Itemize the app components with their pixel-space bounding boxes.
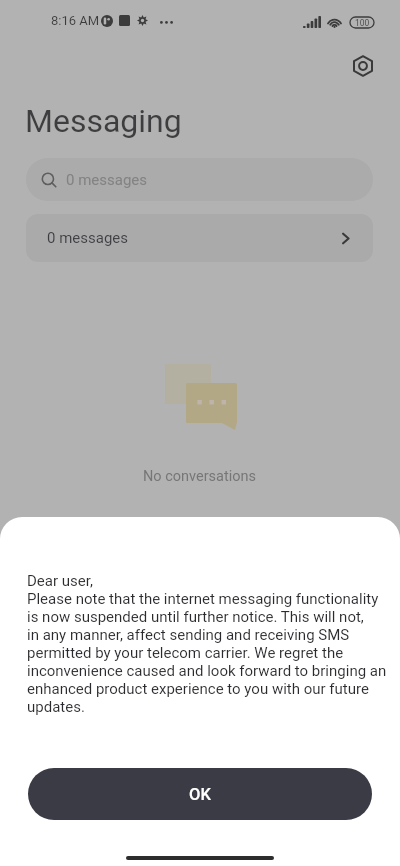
staticText: Messaging	[25, 102, 182, 140]
staticText: 0 messages	[47, 229, 129, 247]
staticText: No conversations	[143, 468, 257, 485]
staticText: 8:16 AM	[51, 13, 100, 28]
button[interactable]: Settings	[342, 45, 384, 87]
staticText: Dear user, Please note that the internet…	[27, 572, 387, 716]
staticText: 0 messages	[66, 171, 148, 189]
button[interactable]: OK	[28, 768, 372, 820]
button[interactable]: 0 messages	[26, 214, 373, 262]
button[interactable]: 0 messages	[26, 158, 373, 201]
staticText: OK	[189, 785, 211, 804]
staticText: 100	[355, 18, 370, 28]
